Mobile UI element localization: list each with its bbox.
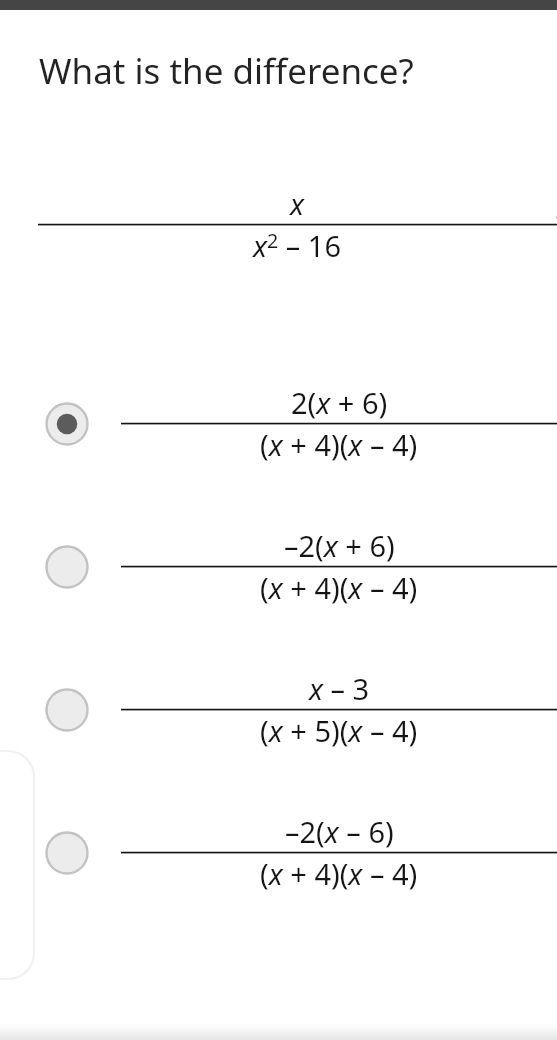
- button[interactable]: Answer option: [0, 495, 557, 638]
- staticText: (x + 4)(x – 4): [260, 568, 418, 607]
- staticText: x – 3: [309, 669, 370, 708]
- other: Answer option: [45, 545, 89, 589]
- other: Answer option: [45, 831, 89, 875]
- staticText: (x + 4)(x – 4): [260, 425, 418, 464]
- button[interactable]: Answer option: [0, 638, 557, 781]
- staticText: x: [290, 184, 305, 223]
- staticText: (x + 4)(x – 4): [260, 854, 418, 893]
- staticText: What is the difference?: [39, 47, 414, 95]
- button[interactable]: Answer option: [0, 781, 557, 924]
- staticText: 2(x + 6): [291, 383, 388, 422]
- staticText: –2(x + 6): [284, 526, 395, 565]
- staticText: x2 – 16: [253, 226, 342, 265]
- button[interactable]: Selected answer option: [0, 352, 557, 495]
- staticText: (x + 5)(x – 4): [260, 711, 418, 750]
- staticText: –2(x – 6): [285, 812, 394, 851]
- other: Answer option: [45, 688, 89, 732]
- other: Selected answer option: [45, 402, 89, 446]
